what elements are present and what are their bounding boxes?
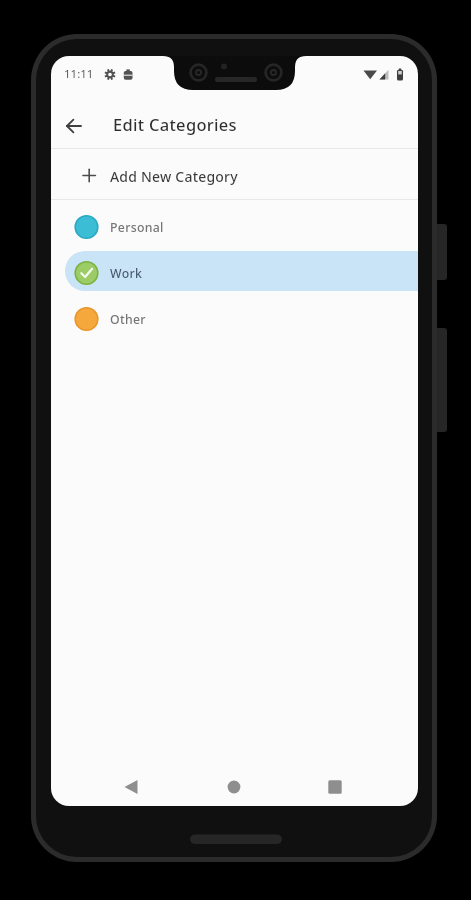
button[interactable]: Add New Category — [51, 149, 418, 199]
staticText: 11:11 — [64, 66, 94, 82]
staticText: Work — [110, 265, 143, 282]
button[interactable]: Personal — [51, 204, 418, 250]
button[interactable]: Work — [51, 250, 418, 296]
button[interactable] — [220, 773, 248, 801]
staticText: Other — [110, 311, 146, 328]
button[interactable] — [54, 106, 94, 146]
staticText: Personal — [110, 219, 164, 236]
button[interactable] — [321, 773, 349, 801]
button[interactable] — [117, 773, 145, 801]
button[interactable]: Other — [51, 296, 418, 342]
staticText: Edit Categories — [113, 113, 237, 135]
staticText: Add New Category — [110, 167, 238, 186]
